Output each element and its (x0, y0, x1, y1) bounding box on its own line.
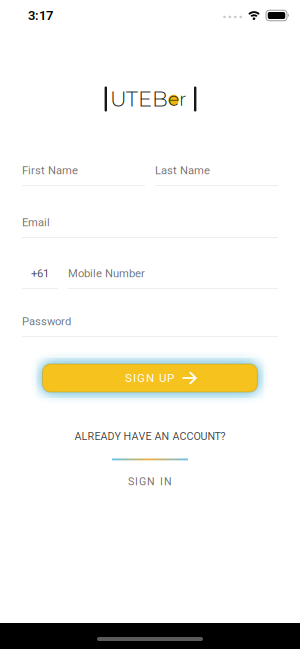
button[interactable]: Password (22, 314, 278, 338)
button[interactable]: S I G N I N (128, 475, 172, 488)
staticText: Last Name (155, 164, 210, 177)
button[interactable]: S I G N U P (42, 364, 257, 392)
staticText: S I G N U P (125, 371, 174, 385)
button[interactable]: +61 (22, 266, 58, 290)
staticText: UTEB (110, 86, 168, 112)
staticText: First Name (22, 164, 78, 177)
staticText: e (168, 87, 179, 111)
staticText: Email (22, 216, 50, 229)
button[interactable]: Email (22, 215, 278, 239)
staticText: 3:17 (28, 8, 53, 23)
button[interactable]: Last Name (155, 163, 278, 187)
staticText: r (179, 87, 186, 111)
button[interactable]: First Name (22, 163, 145, 187)
button[interactable]: Mobile Number (68, 266, 278, 290)
staticText: +61 (31, 267, 49, 280)
staticText: S I G N I N (128, 475, 172, 488)
staticText: ALREADY HAVE AN ACCOUNT? (74, 430, 225, 442)
staticText: Mobile Number (68, 267, 145, 280)
staticText: Password (22, 315, 71, 328)
